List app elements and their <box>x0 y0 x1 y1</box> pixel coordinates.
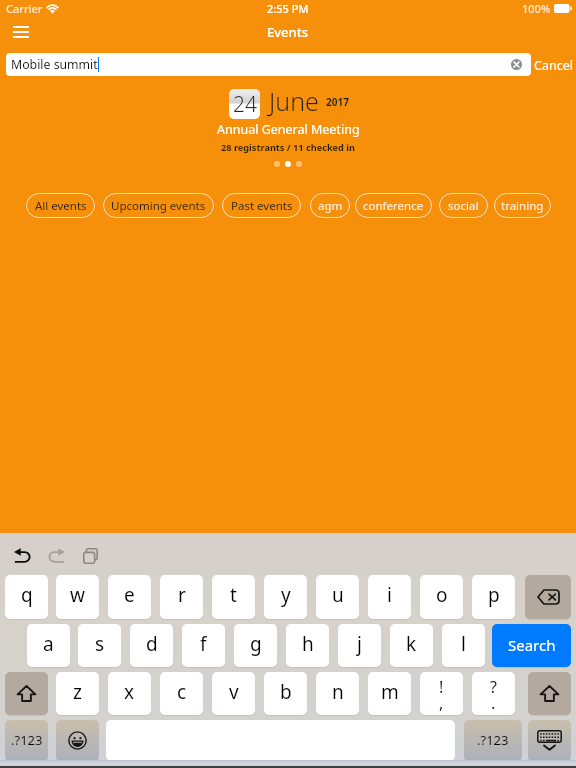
button[interactable]: x <box>108 672 151 715</box>
button[interactable]: w <box>56 575 99 619</box>
button[interactable]: g <box>234 624 277 667</box>
button[interactable]: .?123 <box>5 720 48 761</box>
staticText: a <box>43 631 54 657</box>
staticText: ? <box>490 676 497 698</box>
button[interactable]: training <box>494 193 551 218</box>
button[interactable]: z <box>56 672 99 715</box>
staticText: r <box>178 582 186 608</box>
staticText: Upcoming events <box>111 198 206 214</box>
staticText: e <box>124 582 135 608</box>
staticText: v <box>229 679 239 705</box>
staticText: k <box>406 631 417 657</box>
staticText: q <box>21 582 33 608</box>
staticText: Events <box>267 23 309 41</box>
button[interactable]: m <box>368 672 411 715</box>
staticText: 2:55 PM <box>267 1 309 16</box>
button[interactable]: Shift <box>528 672 571 715</box>
button[interactable]: ? <box>472 672 515 715</box>
staticText: p <box>488 582 500 608</box>
staticText: Carrier <box>6 1 43 16</box>
button[interactable]: a <box>27 624 70 667</box>
staticText: June <box>269 84 319 118</box>
staticText: j <box>357 631 362 657</box>
staticText: i <box>387 582 392 608</box>
button[interactable]: h <box>286 624 329 667</box>
button[interactable]: Mobile summit <box>6 53 531 76</box>
staticText: c <box>177 679 187 705</box>
staticText: 2017 <box>326 95 349 109</box>
staticText: n <box>332 679 344 705</box>
button[interactable]: b <box>264 672 307 715</box>
staticText: agm <box>318 198 343 214</box>
staticText: , <box>439 692 444 714</box>
button[interactable]: c <box>160 672 203 715</box>
button[interactable]: Paste <box>72 538 108 574</box>
staticText: All events <box>35 198 87 214</box>
button[interactable]: Undo <box>4 538 40 574</box>
button[interactable]: Emoji <box>56 720 99 761</box>
button[interactable]: d <box>130 624 173 667</box>
staticText: x <box>124 679 135 705</box>
button[interactable]: Past events <box>222 193 301 218</box>
staticText: ! <box>439 676 444 698</box>
button[interactable]: u <box>316 575 359 619</box>
button[interactable]: All events <box>26 193 95 218</box>
staticText: Cancel <box>534 57 573 74</box>
staticText: z <box>73 679 82 705</box>
staticText: Mobile summit <box>11 56 98 73</box>
staticText: f <box>200 631 207 657</box>
button[interactable]: ! <box>420 672 463 715</box>
button[interactable]: i <box>368 575 411 619</box>
button[interactable]: r <box>160 575 203 619</box>
button[interactable]: Space <box>106 720 455 761</box>
staticText: t <box>230 582 237 608</box>
button[interactable]: .?123 <box>464 720 522 761</box>
button[interactable]: Hide keyboard <box>528 720 571 761</box>
staticText: 28 registrants / 11 checked in <box>221 141 355 154</box>
button[interactable]: social <box>439 193 488 218</box>
staticText: l <box>461 631 466 657</box>
staticText: w <box>70 582 85 608</box>
staticText: training <box>501 198 544 214</box>
button[interactable]: l <box>442 624 485 667</box>
staticText: 24 <box>233 90 257 119</box>
staticText: o <box>436 582 448 608</box>
button[interactable]: e <box>108 575 151 619</box>
button[interactable]: Shift <box>5 672 48 715</box>
staticText: y <box>281 582 291 608</box>
button[interactable]: s <box>78 624 121 667</box>
button[interactable]: t <box>212 575 255 619</box>
button[interactable]: j <box>338 624 381 667</box>
button[interactable]: agm <box>310 193 350 218</box>
button[interactable]: Menu <box>0 20 42 44</box>
staticText: u <box>332 582 344 608</box>
button[interactable]: Cancel <box>534 53 573 77</box>
staticText: 100% <box>522 1 551 16</box>
staticText: conference <box>363 198 424 214</box>
button[interactable]: v <box>212 672 255 715</box>
staticText: m <box>381 679 399 705</box>
staticText: Search <box>508 635 556 655</box>
staticText: social <box>448 198 479 214</box>
staticText: s <box>95 631 105 657</box>
staticText: d <box>146 631 158 657</box>
staticText: h <box>302 631 314 657</box>
button[interactable]: Search <box>492 624 571 667</box>
staticText: b <box>280 679 292 705</box>
staticText: Past events <box>231 198 293 214</box>
button[interactable]: conference <box>355 193 432 218</box>
button[interactable]: f <box>182 624 225 667</box>
staticText: .?123 <box>477 731 509 749</box>
button[interactable]: q <box>5 575 48 619</box>
button[interactable]: o <box>420 575 463 619</box>
button[interactable]: n <box>316 672 359 715</box>
button[interactable]: Backspace <box>525 575 571 619</box>
button[interactable]: Redo <box>38 538 74 574</box>
staticText: Annual General Meeting <box>217 121 360 138</box>
button[interactable]: y <box>264 575 307 619</box>
button[interactable]: k <box>390 624 433 667</box>
button[interactable]: p <box>472 575 515 619</box>
button[interactable]: Clear text <box>511 59 522 70</box>
button[interactable]: Upcoming events <box>103 193 214 218</box>
staticText: g <box>250 631 262 657</box>
